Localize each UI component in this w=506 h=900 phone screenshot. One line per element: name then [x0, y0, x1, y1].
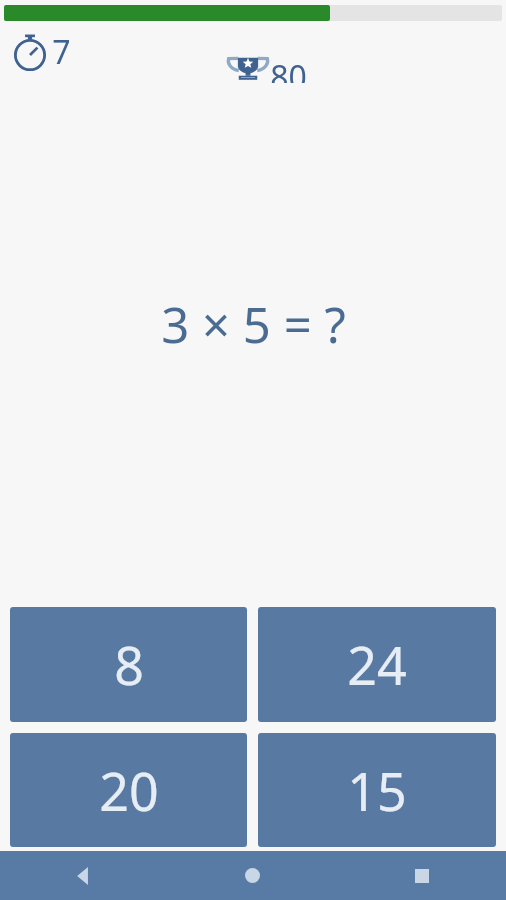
staticText: 80	[270, 55, 307, 83]
button[interactable]: 8	[10, 607, 247, 722]
button[interactable]: 24	[258, 607, 496, 722]
button[interactable]: Recent apps	[337, 851, 506, 900]
button[interactable]: 20	[10, 733, 247, 847]
staticText: 8	[114, 629, 144, 700]
button[interactable]: Score	[226, 55, 307, 83]
staticText: 3 × 5 = ?	[161, 291, 346, 358]
staticText: 7	[52, 30, 71, 74]
button[interactable]: Back	[0, 851, 168, 900]
button[interactable]: 15	[258, 733, 496, 847]
button[interactable]: Time remaining	[11, 30, 71, 74]
staticText: 24	[347, 629, 407, 700]
staticText: 20	[99, 755, 159, 826]
button[interactable]: Home	[168, 851, 337, 900]
staticText: 15	[347, 755, 407, 826]
